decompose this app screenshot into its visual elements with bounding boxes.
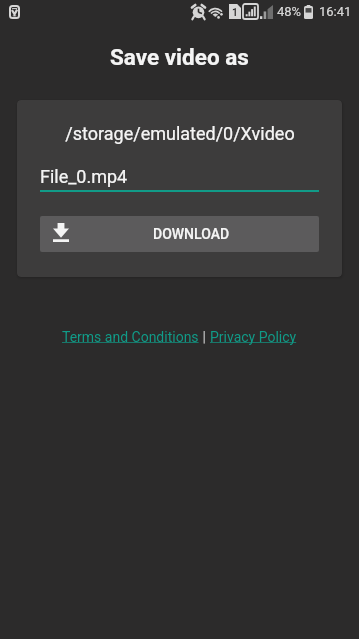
button[interactable]: Terms and Conditions bbox=[62, 329, 199, 345]
staticText: Save video as bbox=[110, 44, 249, 70]
other: Wi-Fi bbox=[208, 5, 224, 18]
staticText: 1 bbox=[232, 7, 238, 19]
button[interactable]: Download bbox=[40, 216, 319, 252]
other: Battery 48 percent bbox=[304, 5, 313, 19]
other: Notification bbox=[9, 5, 20, 19]
staticText: DOWNLOAD bbox=[153, 226, 230, 242]
staticText: File_0.mp4 bbox=[40, 166, 128, 187]
staticText: | bbox=[199, 329, 210, 345]
staticText: /storage/emulated/0/Xvideo bbox=[65, 123, 295, 144]
staticText: 16:41 bbox=[319, 4, 352, 19]
button[interactable]: File_0.mp4 bbox=[40, 159, 319, 192]
button[interactable]: Privacy Policy bbox=[210, 329, 297, 345]
other: Download bbox=[53, 223, 69, 242]
staticText: 48% bbox=[277, 4, 302, 19]
